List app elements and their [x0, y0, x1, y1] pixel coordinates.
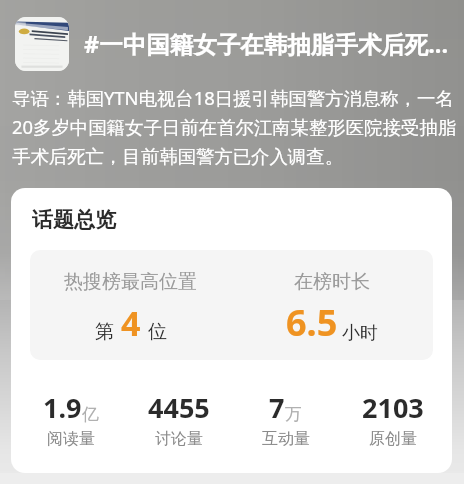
staticText: 导语：韩国YTN电视台18日援引韩国警方消息称，一名20多岁中国籍女子日前在首尔… — [12, 85, 464, 169]
staticText: 在榜时长 — [294, 270, 370, 294]
staticText: 4455 — [148, 389, 210, 426]
staticText: 2103 — [362, 389, 424, 426]
staticText: 7 — [269, 389, 285, 426]
staticText: 互动量 — [262, 429, 310, 449]
button[interactable]: 7 — [232, 389, 339, 449]
staticText: 原创量 — [369, 429, 417, 449]
button[interactable]: 4455 — [125, 389, 232, 449]
staticText: #一中国籍女子在韩抽脂手术后死... — [84, 28, 448, 60]
button[interactable]: Topic thumbnail — [15, 17, 456, 71]
button[interactable]: 2103 — [339, 389, 446, 449]
staticText: 小时 — [342, 322, 378, 345]
staticText: 第 — [95, 320, 114, 344]
staticText: 话题总览 — [32, 207, 116, 233]
staticText: 4 — [121, 300, 141, 346]
staticText: 6.5 — [286, 298, 338, 347]
staticText: 阅读量 — [47, 429, 95, 449]
staticText: 热搜榜最高位置 — [64, 270, 197, 294]
staticText: 位 — [148, 320, 167, 344]
button[interactable]: 1.9 — [17, 389, 125, 449]
staticText: 讨论量 — [155, 429, 203, 449]
staticText: 1.9 — [43, 389, 82, 426]
staticText: 亿 — [82, 404, 99, 425]
other: Topic thumbnail — [15, 17, 69, 71]
staticText: 万 — [285, 404, 302, 425]
